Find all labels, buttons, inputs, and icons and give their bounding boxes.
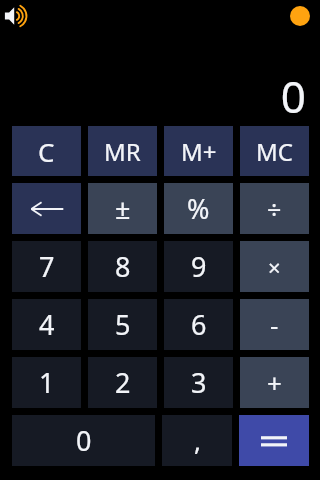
staticText: MC [256, 135, 293, 168]
staticText: ± [115, 190, 131, 227]
staticText: 6 [191, 306, 207, 343]
button[interactable]: % [164, 183, 233, 234]
button[interactable]: ÷ [240, 183, 309, 234]
staticText: 9 [191, 248, 207, 285]
staticText: 8 [115, 248, 131, 285]
button[interactable]: ± [88, 183, 157, 234]
button[interactable]: Equals [239, 415, 309, 466]
staticText: MR [104, 135, 141, 168]
button[interactable]: 7 [12, 241, 81, 292]
staticText: 3 [191, 364, 207, 401]
staticText: % [187, 190, 210, 227]
button[interactable]: MR [88, 126, 157, 176]
staticText: + [267, 365, 282, 400]
button[interactable]: MC [240, 126, 309, 176]
staticText: 7 [39, 248, 55, 285]
other: Notification [290, 6, 310, 26]
button[interactable]: 0 [12, 415, 155, 466]
button[interactable]: × [240, 241, 309, 292]
button[interactable]: 1 [12, 357, 81, 408]
staticText: 0 [76, 422, 92, 459]
button[interactable]: 2 [88, 357, 157, 408]
button[interactable]: 9 [164, 241, 233, 292]
staticText: C [38, 134, 55, 169]
button[interactable]: 5 [88, 299, 157, 350]
staticText: ÷ [267, 192, 282, 226]
button[interactable]: , [162, 415, 232, 466]
button[interactable]: M+ [164, 126, 233, 176]
button[interactable]: 6 [164, 299, 233, 350]
staticText: 1 [39, 364, 55, 401]
staticText: , [194, 423, 201, 458]
button[interactable]: - [240, 299, 309, 350]
button[interactable]: C [12, 126, 81, 176]
staticText: 5 [115, 306, 131, 343]
other: Volume [4, 5, 34, 27]
button[interactable]: + [240, 357, 309, 408]
staticText: 0 [280, 66, 306, 126]
staticText: M+ [181, 135, 217, 168]
staticText: × [268, 252, 281, 282]
button[interactable]: 8 [88, 241, 157, 292]
button[interactable]: Backspace [12, 183, 81, 234]
staticText: - [270, 307, 279, 342]
staticText: 2 [115, 364, 131, 401]
button[interactable]: 4 [12, 299, 81, 350]
staticText: 4 [39, 306, 55, 343]
button[interactable]: 3 [164, 357, 233, 408]
